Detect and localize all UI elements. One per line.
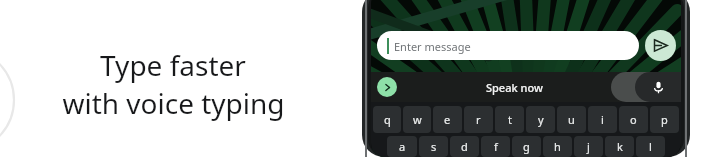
button[interactable]: l (636, 136, 665, 157)
button[interactable]: s (419, 136, 448, 157)
button[interactable]: w (403, 106, 431, 133)
staticText: e (444, 112, 451, 127)
staticText: u (568, 112, 575, 127)
button[interactable]: j (574, 136, 603, 157)
staticText: f (494, 139, 498, 154)
button[interactable]: Microphone (647, 76, 669, 98)
staticText: with voice typing (62, 84, 285, 122)
staticText: Type faster (100, 46, 246, 84)
button[interactable]: Expand (377, 77, 397, 97)
button[interactable]: r (464, 106, 493, 133)
button[interactable]: d (450, 136, 479, 157)
staticText: w (413, 112, 422, 127)
staticText: a (399, 139, 406, 154)
button[interactable]: i (588, 106, 617, 133)
button[interactable]: h (543, 136, 572, 157)
staticText: l (649, 139, 652, 154)
staticText: t (508, 112, 512, 127)
staticText: i (601, 112, 604, 127)
button[interactable]: k (605, 136, 634, 157)
button[interactable]: Send (645, 30, 676, 61)
staticText: Enter message (394, 39, 471, 54)
staticText: r (476, 112, 481, 127)
staticText: p (661, 112, 668, 127)
staticText: s (431, 139, 437, 154)
staticText: g (523, 139, 530, 154)
staticText: y (538, 112, 544, 127)
staticText: d (461, 139, 468, 154)
button[interactable]: y (526, 106, 555, 133)
button[interactable]: u (557, 106, 586, 133)
staticText: j (587, 139, 590, 154)
staticText: Speak now (486, 80, 543, 95)
button[interactable]: f (481, 136, 510, 157)
staticText: k (617, 139, 623, 154)
staticText: h (554, 139, 561, 154)
button[interactable]: Enter message (377, 31, 639, 60)
button[interactable]: g (512, 136, 541, 157)
button[interactable]: a (387, 136, 417, 157)
button[interactable]: q (373, 106, 401, 133)
button[interactable]: t (495, 106, 524, 133)
button[interactable]: p (650, 106, 679, 133)
button[interactable]: e (433, 106, 462, 133)
staticText: o (630, 112, 637, 127)
button[interactable]: o (619, 106, 648, 133)
staticText: q (384, 112, 391, 127)
